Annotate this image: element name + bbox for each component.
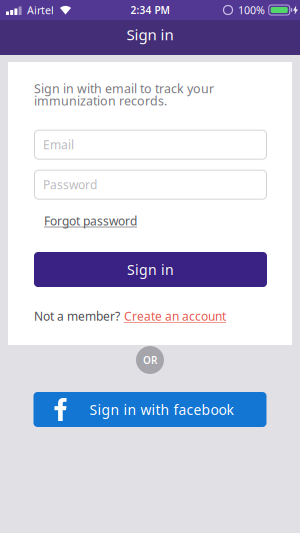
staticText: Not a member? bbox=[34, 308, 120, 324]
staticText: Sign in with email to track your immuniz… bbox=[34, 80, 214, 109]
staticText: Airtel bbox=[27, 3, 54, 17]
staticText: Password bbox=[43, 176, 97, 193]
staticText: Email bbox=[43, 136, 74, 153]
staticText: Forgot password bbox=[44, 213, 137, 229]
staticText: Create an account bbox=[124, 308, 226, 324]
staticText: Sign in bbox=[126, 24, 173, 45]
staticText: 2:34 PM bbox=[130, 3, 169, 17]
staticText: Sign in with facebook bbox=[89, 400, 233, 419]
staticText: Sign in bbox=[127, 260, 174, 279]
staticText: OR bbox=[143, 353, 157, 367]
staticText: 100% bbox=[238, 3, 265, 17]
